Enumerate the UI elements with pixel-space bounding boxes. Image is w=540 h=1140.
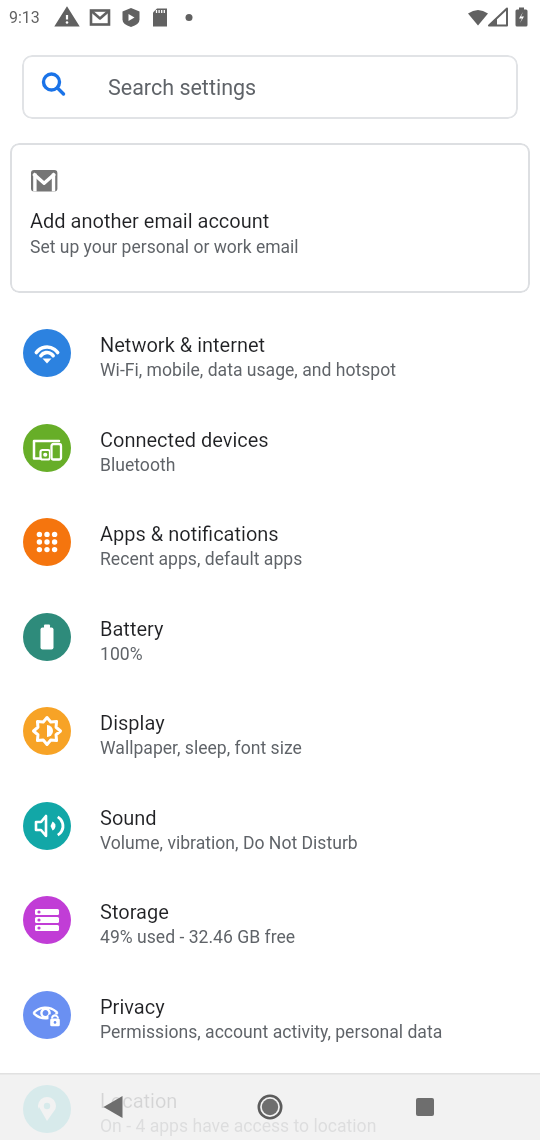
staticText: Set up your personal or work email	[30, 237, 299, 258]
button[interactable]: Sound	[0, 779, 540, 873]
staticText: Recent apps, default apps	[100, 549, 303, 570]
staticText: Battery	[100, 617, 164, 640]
button[interactable]: Network & internet	[0, 306, 540, 400]
staticText: Apps & notifications	[100, 522, 279, 545]
staticText: Network & internet	[100, 333, 266, 356]
button[interactable]	[248, 1085, 292, 1129]
button[interactable]: Privacy	[0, 968, 540, 1062]
button[interactable]: Battery	[0, 590, 540, 684]
staticText: Location	[100, 1089, 178, 1112]
button[interactable]: Storage	[0, 873, 540, 967]
staticText: 49% used - 32.46 GB free	[100, 927, 296, 948]
staticText: 100%	[100, 644, 143, 665]
button[interactable]	[403, 1085, 447, 1129]
button[interactable]: Apps & notifications	[0, 495, 540, 589]
button[interactable]: Search settings	[22, 55, 518, 119]
staticText: Display	[100, 711, 165, 734]
staticText: 9:13	[9, 8, 40, 27]
staticText: Sound	[100, 806, 157, 829]
button[interactable]: Add another email account	[10, 143, 530, 293]
staticText: Volume, vibration, Do Not Disturb	[100, 833, 358, 854]
staticText: Storage	[100, 900, 169, 923]
staticText: Privacy	[100, 995, 165, 1018]
staticText: Permissions, account activity, personal …	[100, 1022, 443, 1043]
button[interactable]: Connected devices	[0, 401, 540, 495]
button[interactable]	[92, 1085, 136, 1129]
staticText: Add another email account	[30, 209, 270, 232]
staticText: On - 4 apps have access to location	[100, 1116, 377, 1137]
staticText: Wi-Fi, mobile, data usage, and hotspot	[100, 360, 397, 381]
button[interactable]: Display	[0, 684, 540, 778]
staticText: Wallpaper, sleep, font size	[100, 738, 302, 759]
staticText: Search settings	[108, 75, 257, 100]
button[interactable]: Location	[0, 1062, 540, 1140]
staticText: Bluetooth	[100, 455, 176, 476]
staticText: Connected devices	[100, 428, 269, 451]
